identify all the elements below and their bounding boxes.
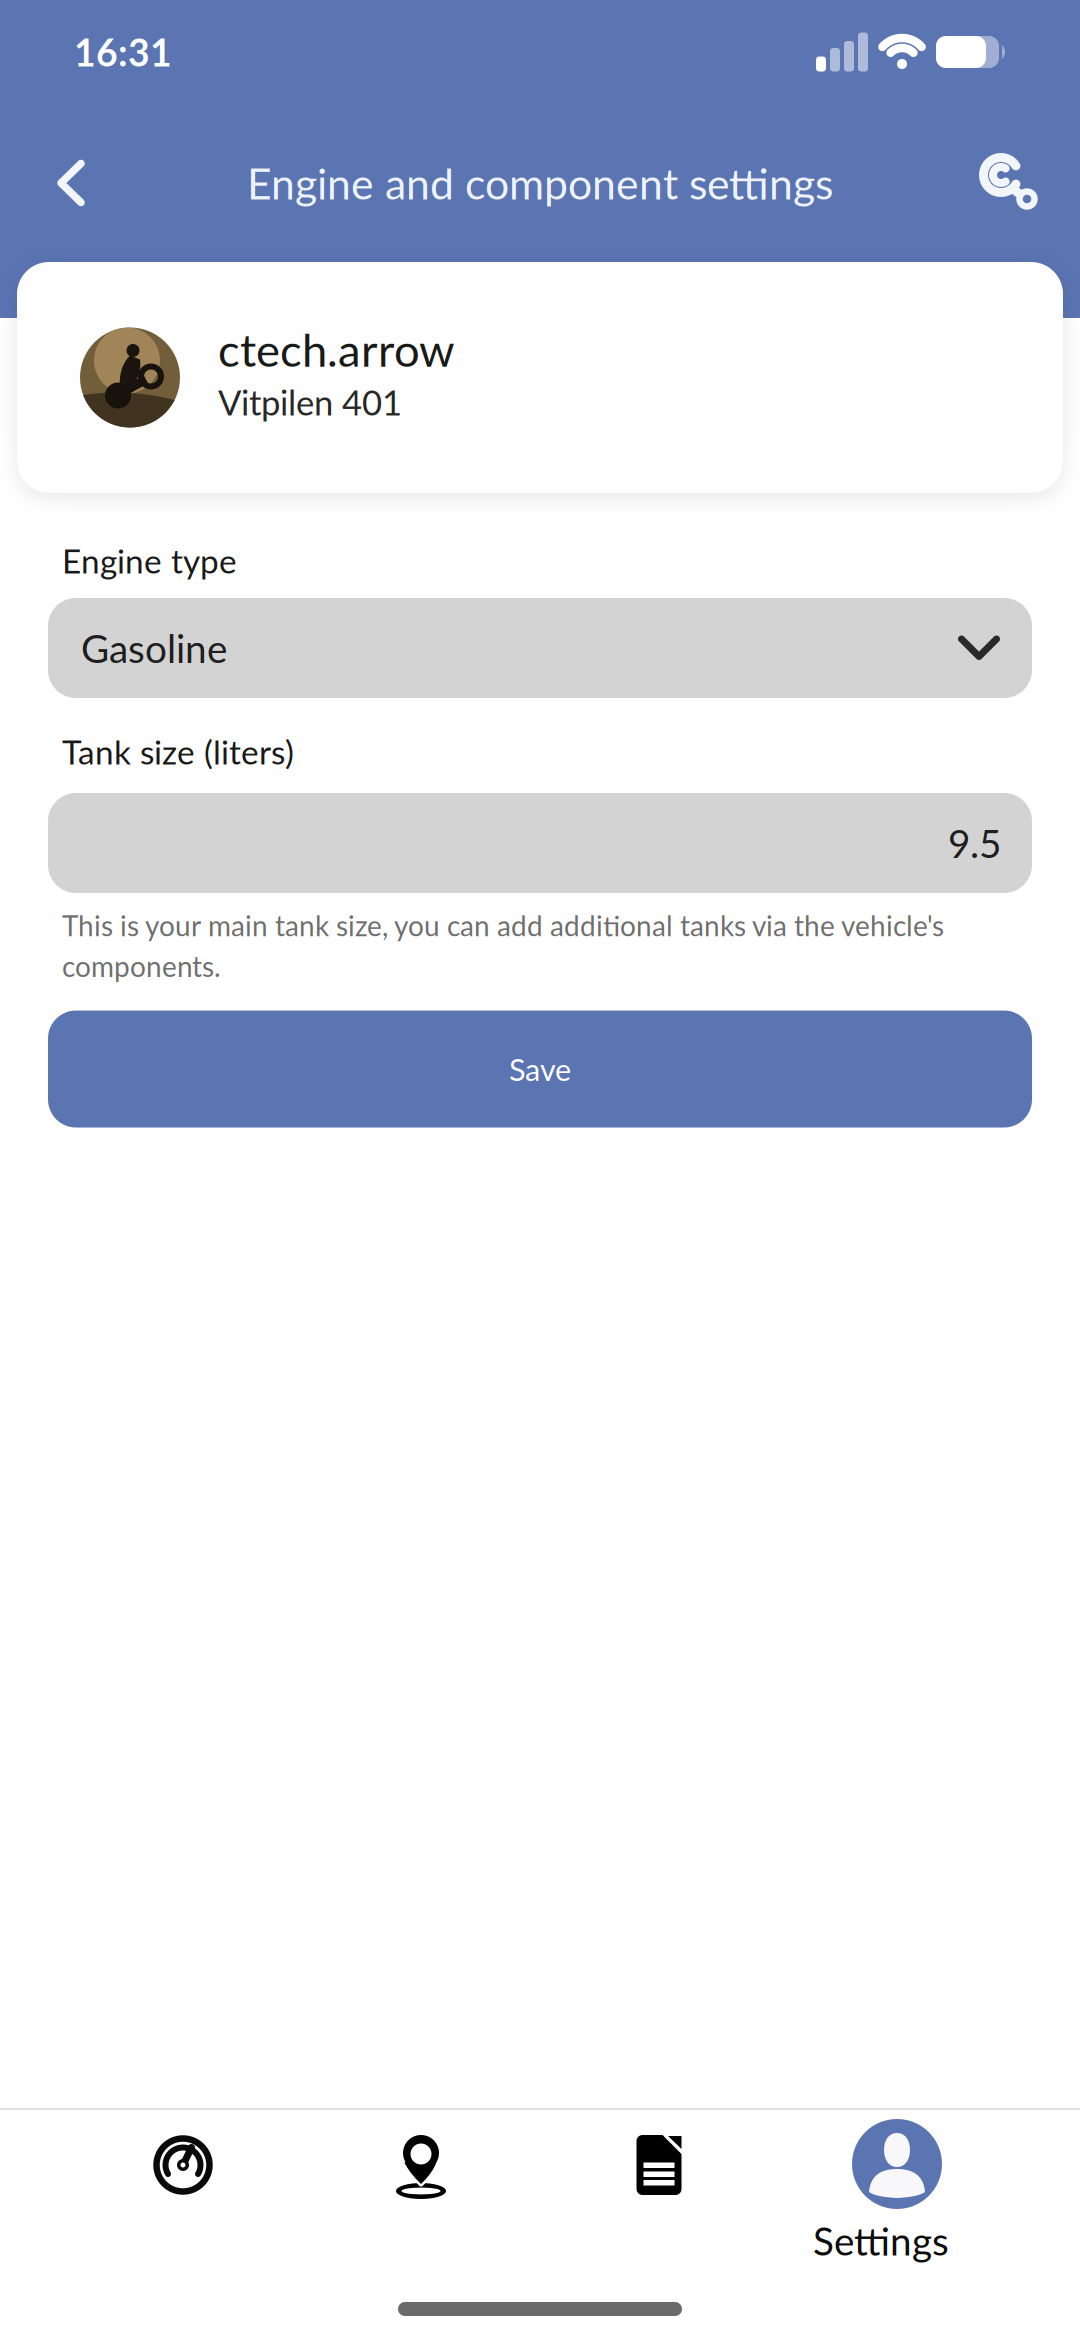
- staticText: 16:31: [74, 30, 172, 74]
- staticText: Gasoline: [81, 625, 227, 671]
- button[interactable]: Map: [302, 2110, 540, 2197]
- button[interactable]: Settings: [778, 2110, 1016, 2263]
- staticText: Settings: [813, 2218, 949, 2263]
- staticText: Engine type: [62, 541, 237, 580]
- button[interactable]: ctech.arrow: [17, 262, 1063, 493]
- staticText: This is your main tank size, you can add…: [62, 909, 944, 982]
- button[interactable]: Logs: [540, 2110, 778, 2195]
- staticText: Tank size (liters): [62, 732, 294, 771]
- staticText: Vitpilen 401: [218, 382, 402, 422]
- staticText: Save: [509, 1051, 571, 1087]
- button[interactable]: Save: [48, 1010, 1032, 1127]
- button[interactable]: 9.5: [48, 793, 1032, 893]
- button[interactable]: Components: [978, 153, 1080, 213]
- button[interactable]: Dashboard: [64, 2110, 302, 2195]
- button[interactable]: Back: [0, 159, 85, 206]
- staticText: Engine and component settings: [247, 158, 833, 208]
- button[interactable]: Gasoline: [48, 598, 1032, 698]
- staticText: ctech.arrow: [218, 323, 455, 376]
- staticText: 9.5: [948, 820, 1001, 866]
